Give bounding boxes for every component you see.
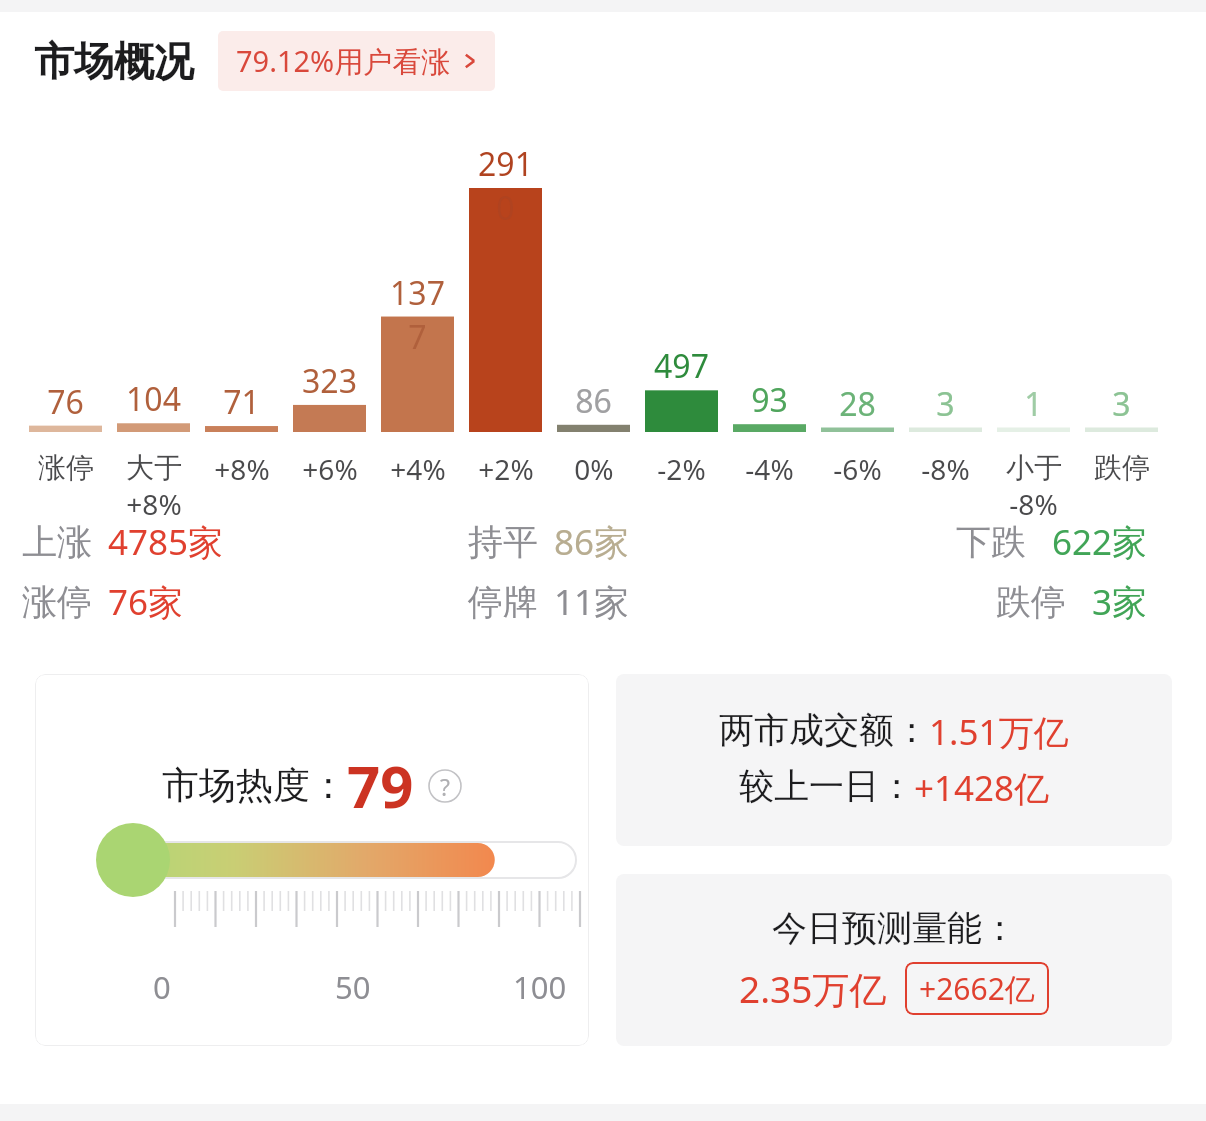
staticText: 涨停: [38, 450, 94, 485]
staticText: +6%: [302, 450, 358, 488]
staticText: 上涨: [22, 520, 92, 564]
staticText: -2%: [657, 450, 706, 488]
staticText: 跌停: [1094, 450, 1150, 485]
staticText: 1377: [381, 271, 454, 359]
staticText: 76: [47, 380, 84, 424]
staticText: 79: [347, 746, 414, 825]
staticText: 持平: [468, 520, 538, 564]
staticText: 3: [1112, 382, 1131, 426]
staticText: +2662亿: [919, 968, 1035, 1009]
staticText: 今日预测量能：: [772, 906, 1017, 950]
staticText: 跌停: [996, 580, 1066, 624]
staticText: 86: [575, 379, 612, 423]
staticText: 涨停: [22, 580, 92, 624]
staticText: 1: [1024, 382, 1043, 426]
staticText: 停牌: [468, 580, 538, 624]
staticText: -8%: [921, 450, 970, 488]
staticText: 大于: [126, 450, 182, 485]
staticText: -8%: [1009, 485, 1058, 523]
staticText: 50: [335, 966, 371, 1008]
staticText: 0: [153, 966, 171, 1008]
staticText: 市场热度：: [162, 762, 347, 809]
staticText: 622家: [1052, 518, 1148, 566]
staticText: 104: [126, 377, 181, 421]
staticText: -4%: [745, 450, 794, 488]
staticText: 4785家: [108, 518, 224, 566]
staticText: 497: [654, 344, 709, 388]
staticText: 76家: [108, 578, 184, 626]
staticText: 100: [513, 966, 567, 1008]
staticText: 0%: [574, 450, 614, 488]
staticText: 93: [751, 378, 788, 422]
staticText: +2%: [478, 450, 534, 488]
staticText: 两市成交额：: [719, 708, 929, 752]
button[interactable]: 市场热度：: [35, 674, 589, 1046]
staticText: 3家: [1092, 578, 1148, 626]
staticText: 下跌: [956, 520, 1026, 564]
staticText: 市场概况: [34, 36, 194, 86]
staticText: +4%: [390, 450, 446, 488]
staticText: 86家: [554, 518, 630, 566]
staticText: 1.51万亿: [929, 708, 1069, 756]
staticText: 2.35万亿: [739, 963, 887, 1014]
staticText: 较上一日：: [739, 764, 914, 808]
staticText: 2910: [469, 142, 542, 230]
button[interactable]: 79.12%用户看涨: [218, 31, 495, 91]
staticText: +8%: [126, 485, 182, 523]
staticText: 3: [936, 382, 955, 426]
staticText: 71: [223, 380, 260, 424]
button[interactable]: 帮助: [428, 769, 462, 803]
staticText: 79.12%用户看涨: [236, 41, 451, 81]
staticText: 11家: [554, 578, 630, 626]
staticText: ?: [440, 771, 450, 802]
staticText: 323: [302, 359, 357, 403]
staticText: +8%: [214, 450, 270, 488]
staticText: +1428亿: [914, 764, 1050, 812]
button[interactable]: 两市成交额：: [616, 674, 1172, 846]
staticText: -6%: [833, 450, 882, 488]
button[interactable]: 今日预测量能：: [616, 874, 1172, 1046]
staticText: 28: [839, 382, 876, 426]
staticText: 小于: [1006, 450, 1062, 485]
